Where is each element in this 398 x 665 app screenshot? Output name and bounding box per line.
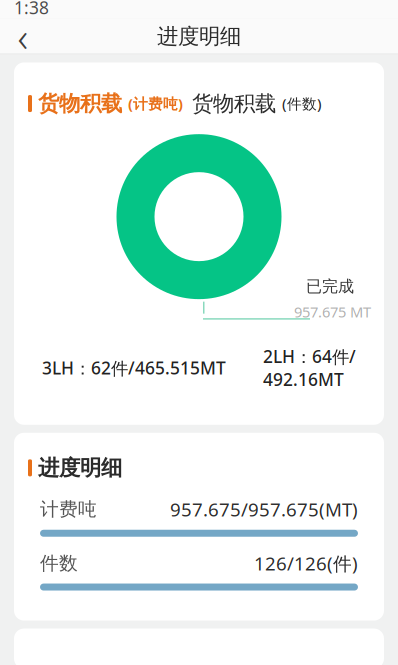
staticText: 957.675/957.675(MT) xyxy=(170,497,358,522)
staticText: 已完成 xyxy=(306,276,354,296)
staticText: 件数 xyxy=(40,552,78,575)
staticText: 3LH：62件/465.515MT xyxy=(42,356,226,379)
staticText: 计费吨 xyxy=(40,498,97,521)
staticText: 进度明细 xyxy=(38,455,122,481)
button[interactable]: 货物积载 xyxy=(14,84,183,123)
staticText: 货物积载 xyxy=(38,90,122,117)
button[interactable]: 货物积载 xyxy=(192,84,322,123)
staticText: 货物积载 xyxy=(192,90,276,117)
staticText: (件数) xyxy=(282,94,322,113)
staticText: 2LH：64件/492.16MT xyxy=(263,345,356,391)
staticText: 进度明细 xyxy=(157,23,241,49)
staticText: 1:38 xyxy=(14,0,49,19)
staticText: 957.675 MT xyxy=(294,302,371,322)
staticText: 126/126(件) xyxy=(254,551,358,576)
staticText: (计费吨) xyxy=(128,94,183,113)
staticText: ‹ xyxy=(17,10,28,63)
button[interactable]: Back xyxy=(0,18,46,54)
